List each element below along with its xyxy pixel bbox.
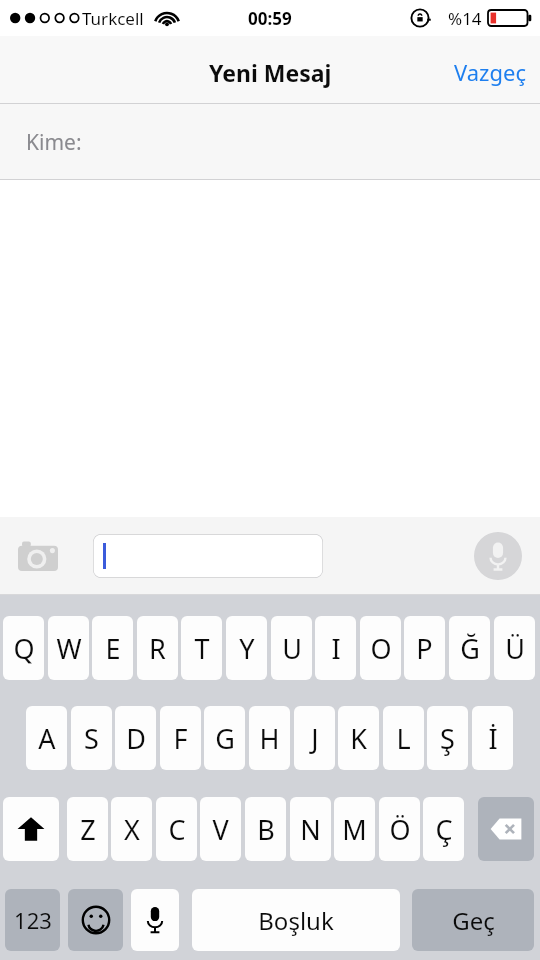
button[interactable]: T <box>181 616 222 680</box>
staticText: V <box>212 811 229 848</box>
button[interactable]: R <box>137 616 178 680</box>
button[interactable]: N <box>290 797 331 861</box>
staticText: H <box>259 720 280 757</box>
staticText: Kime: <box>26 128 82 157</box>
staticText: Ö <box>389 811 411 848</box>
staticText: G <box>215 720 235 757</box>
button[interactable]: Backspace <box>478 797 534 861</box>
button[interactable]: I <box>315 616 356 680</box>
button[interactable]: 123 <box>5 889 60 951</box>
staticText: Ğ <box>460 630 480 667</box>
button[interactable]: Vazgeç <box>440 47 540 97</box>
button[interactable]: Ç <box>423 797 464 861</box>
button[interactable]: Ü <box>494 616 535 680</box>
button[interactable] <box>93 534 323 578</box>
staticText: U <box>282 630 302 667</box>
button[interactable]: B <box>245 797 286 861</box>
button[interactable]: X <box>111 797 152 861</box>
staticText: C <box>168 811 186 848</box>
staticText: P <box>416 630 433 667</box>
staticText: Q <box>13 630 35 667</box>
staticText: D <box>126 720 146 757</box>
staticText: Vazgeç <box>454 57 526 87</box>
button[interactable] <box>3 797 59 861</box>
button[interactable]: L <box>383 706 424 770</box>
staticText: Ç <box>435 811 453 848</box>
button[interactable]: Ğ <box>449 616 490 680</box>
button[interactable]: S <box>71 706 112 770</box>
button[interactable]: C <box>156 797 197 861</box>
button[interactable]: Dictate <box>474 532 522 580</box>
button[interactable]: Emoji <box>68 889 123 951</box>
staticText: L <box>396 720 411 757</box>
button[interactable]: Ö <box>379 797 420 861</box>
staticText: N <box>300 811 321 848</box>
button[interactable]: M <box>334 797 375 861</box>
staticText: Ş <box>440 720 455 757</box>
button[interactable]: Y <box>226 616 267 680</box>
staticText: E <box>105 630 121 667</box>
button[interactable]: D <box>115 706 156 770</box>
staticText: Turkcell <box>82 7 144 30</box>
button[interactable]: V <box>200 797 241 861</box>
staticText: Geç <box>452 904 495 937</box>
staticText: R <box>149 630 166 667</box>
button[interactable]: K <box>338 706 379 770</box>
button[interactable]: Camera <box>12 530 64 582</box>
staticText: J <box>311 720 319 757</box>
button[interactable]: P <box>404 616 445 680</box>
button[interactable]: İ <box>472 706 513 770</box>
staticText: K <box>350 720 367 757</box>
button[interactable]: Ş <box>427 706 468 770</box>
staticText: 00:59 <box>248 7 292 30</box>
staticText: F <box>173 720 188 757</box>
staticText: Z <box>80 811 96 848</box>
button[interactable]: Q <box>3 616 44 680</box>
staticText: Boşluk <box>258 904 334 937</box>
staticText: Y <box>239 630 255 667</box>
button[interactable]: Boşluk <box>192 889 400 951</box>
staticText: 123 <box>14 905 52 935</box>
button[interactable]: F <box>160 706 201 770</box>
button[interactable]: Geç <box>412 889 534 951</box>
button[interactable]: Z <box>67 797 108 861</box>
staticText: Yeni Mesaj <box>209 57 332 88</box>
button[interactable]: W <box>48 616 89 680</box>
button[interactable]: Kime: <box>0 104 540 180</box>
button[interactable]: G <box>204 706 245 770</box>
staticText: O <box>370 630 392 667</box>
button[interactable]: H <box>249 706 290 770</box>
staticText: I <box>331 630 341 667</box>
staticText: B <box>257 811 275 848</box>
button[interactable]: E <box>92 616 133 680</box>
staticText: Ü <box>505 630 525 667</box>
staticText: X <box>124 811 140 848</box>
staticText: W <box>56 630 82 667</box>
staticText: T <box>194 630 210 667</box>
staticText: %14 <box>448 7 482 30</box>
staticText: İ <box>488 720 498 757</box>
button[interactable]: U <box>271 616 312 680</box>
button[interactable]: Voice input <box>131 889 179 951</box>
staticText: S <box>84 720 99 757</box>
staticText: M <box>342 811 367 848</box>
staticText: A <box>38 720 56 757</box>
button[interactable]: O <box>360 616 401 680</box>
button[interactable]: J <box>294 706 335 770</box>
button[interactable]: A <box>26 706 67 770</box>
